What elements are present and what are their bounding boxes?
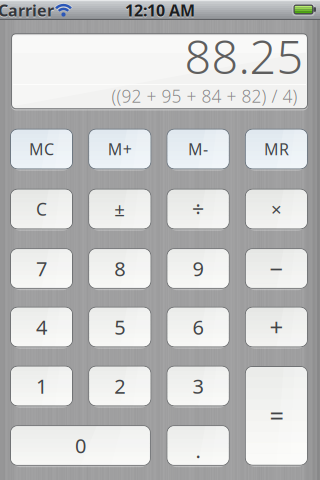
staticText: = [269,399,283,432]
staticText: ((92 + 95 + 84 + 82) / 4) [111,84,297,107]
staticText: × [271,197,282,221]
staticText: 6 [193,314,204,340]
button[interactable]: 2 [88,366,151,406]
staticText: 3 [193,373,204,399]
staticText: 12:10 AM [125,1,195,22]
staticText: . [196,437,201,464]
button[interactable]: 5 [88,307,151,347]
button[interactable]: 3 [167,366,230,406]
button[interactable]: 6 [167,307,230,347]
button[interactable]: M- [167,129,230,169]
button[interactable]: 9 [167,248,230,289]
staticText: 88.25 [184,25,303,87]
button[interactable]: − [245,248,308,289]
staticText: M- [188,138,208,160]
staticText: M+ [108,138,132,160]
staticText: 0 [75,432,86,459]
staticText: 12:10 AM [125,0,195,21]
button[interactable]: 4 [10,307,73,347]
button[interactable]: ÷ [167,189,230,229]
button[interactable]: MC [10,129,73,169]
staticText: MC [29,138,54,160]
staticText: Carrier [0,1,54,22]
button[interactable]: + [245,307,308,347]
button[interactable]: 8 [88,248,151,289]
staticText: 8 [114,255,125,282]
staticText: 5 [114,314,125,340]
staticText: + [269,311,283,343]
staticText: 1 [36,373,47,399]
button[interactable]: MR [245,129,308,169]
staticText: ÷ [192,195,204,223]
staticText: − [269,253,283,284]
staticText: 9 [193,255,204,282]
button[interactable]: 7 [10,248,73,289]
button[interactable]: 1 [10,366,73,406]
staticText: ± [114,197,125,221]
button[interactable]: . [167,425,230,466]
staticText: 4 [36,314,47,340]
staticText: C [36,197,47,220]
button[interactable]: ± [88,189,151,229]
button[interactable]: × [245,189,308,229]
staticText: 2 [114,373,125,399]
staticText: 7 [36,255,47,282]
button[interactable]: 0 [10,425,151,466]
button[interactable]: M+ [88,129,151,169]
staticText: Carrier [0,0,54,21]
staticText: MR [264,138,289,160]
button[interactable]: = [245,366,308,465]
button[interactable]: C [10,189,73,229]
